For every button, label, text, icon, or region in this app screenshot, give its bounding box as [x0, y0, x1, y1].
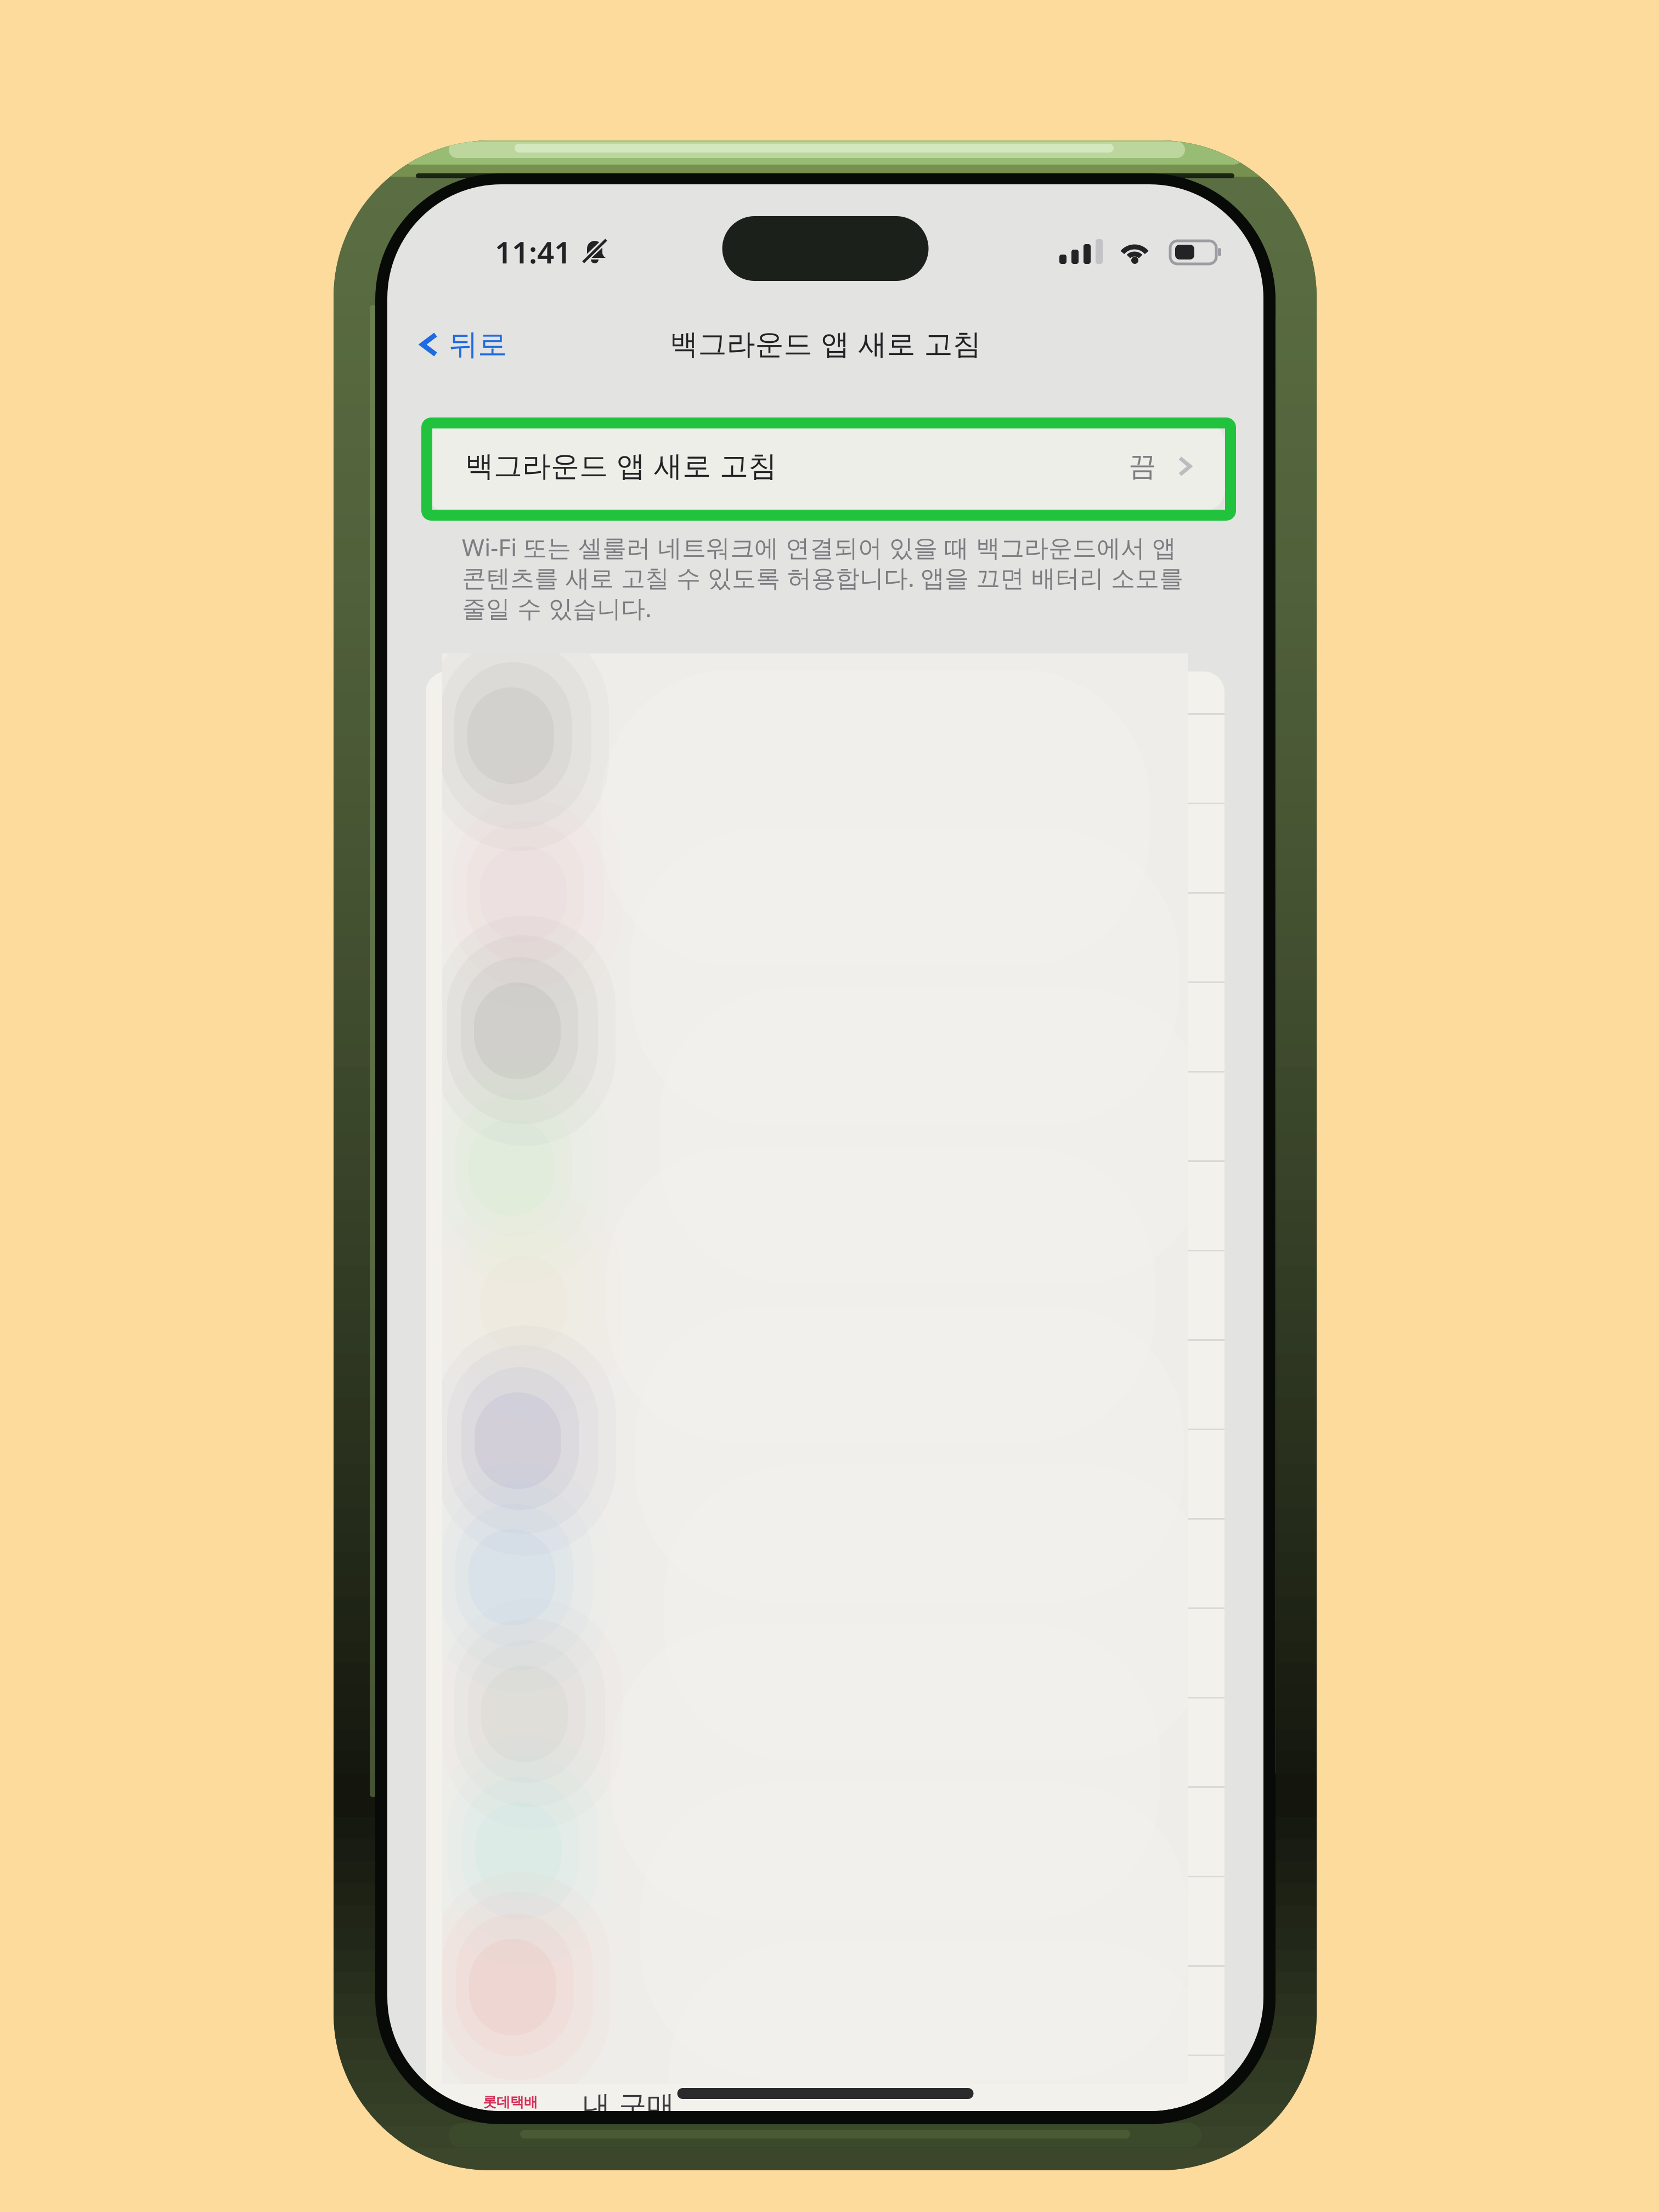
- button[interactable]: 앱 2: [426, 803, 1224, 892]
- staticText: 끔: [1128, 449, 1156, 483]
- button[interactable]: 앱 6: [426, 1160, 1224, 1250]
- staticText: …내 구매: [561, 2086, 675, 2123]
- button[interactable]: 앱 13: [426, 1786, 1224, 1876]
- button[interactable]: 뒤로: [406, 308, 636, 381]
- button[interactable]: 백그라운드 앱 새로 고침: [426, 421, 1224, 511]
- staticText: 백그라운드 앱 새로 고침: [465, 449, 777, 484]
- staticText: 뒤로: [449, 327, 507, 362]
- button[interactable]: 앱 12: [426, 1697, 1224, 1786]
- staticText: 11:41: [495, 232, 571, 272]
- button[interactable]: 앱 11: [426, 1607, 1224, 1697]
- button[interactable]: 앱 15: [426, 1965, 1224, 2055]
- button[interactable]: 앱 5: [426, 1071, 1224, 1160]
- button[interactable]: 앱 7: [426, 1250, 1224, 1339]
- button[interactable]: 앱 16: [426, 2055, 1224, 2144]
- button[interactable]: 앱 9: [426, 1429, 1224, 1518]
- button[interactable]: 앱 3: [426, 892, 1224, 981]
- staticText: 백그라운드 앱 새로 고침: [670, 327, 981, 362]
- button[interactable]: 앱 8: [426, 1339, 1224, 1429]
- button[interactable]: 앱 14: [426, 1876, 1224, 1965]
- staticText: 롯데택배: [483, 2093, 538, 2111]
- staticText: Wi-Fi 또는 셀룰러 네트워크에 연결되어 있을 때 백그라운드에서 앱 콘…: [462, 531, 1183, 624]
- button[interactable]: 앱 4: [426, 981, 1224, 1071]
- button[interactable]: 앱 1: [426, 713, 1224, 803]
- button[interactable]: 앱 10: [426, 1518, 1224, 1607]
